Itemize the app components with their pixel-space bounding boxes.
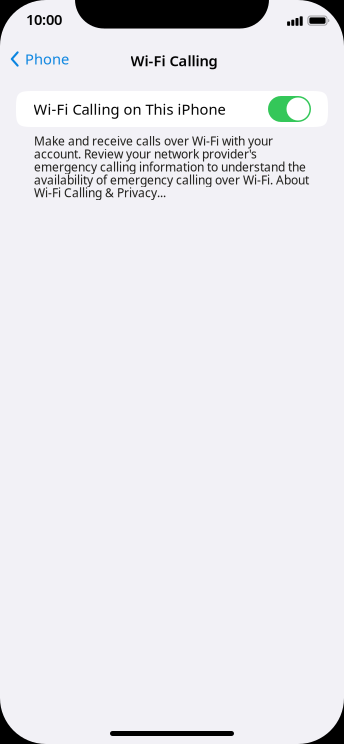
staticText: Phone [25,49,69,68]
staticText: 10:00 [26,9,62,29]
staticText: Wi-Fi Calling on This iPhone [33,99,225,119]
button[interactable]: Wi-Fi Calling on This iPhone [16,91,328,127]
staticText: Make and receive calls over Wi-Fi with y… [34,133,309,201]
button[interactable]: Phone [0,44,80,78]
staticText: Wi-Fi Calling [130,51,217,70]
